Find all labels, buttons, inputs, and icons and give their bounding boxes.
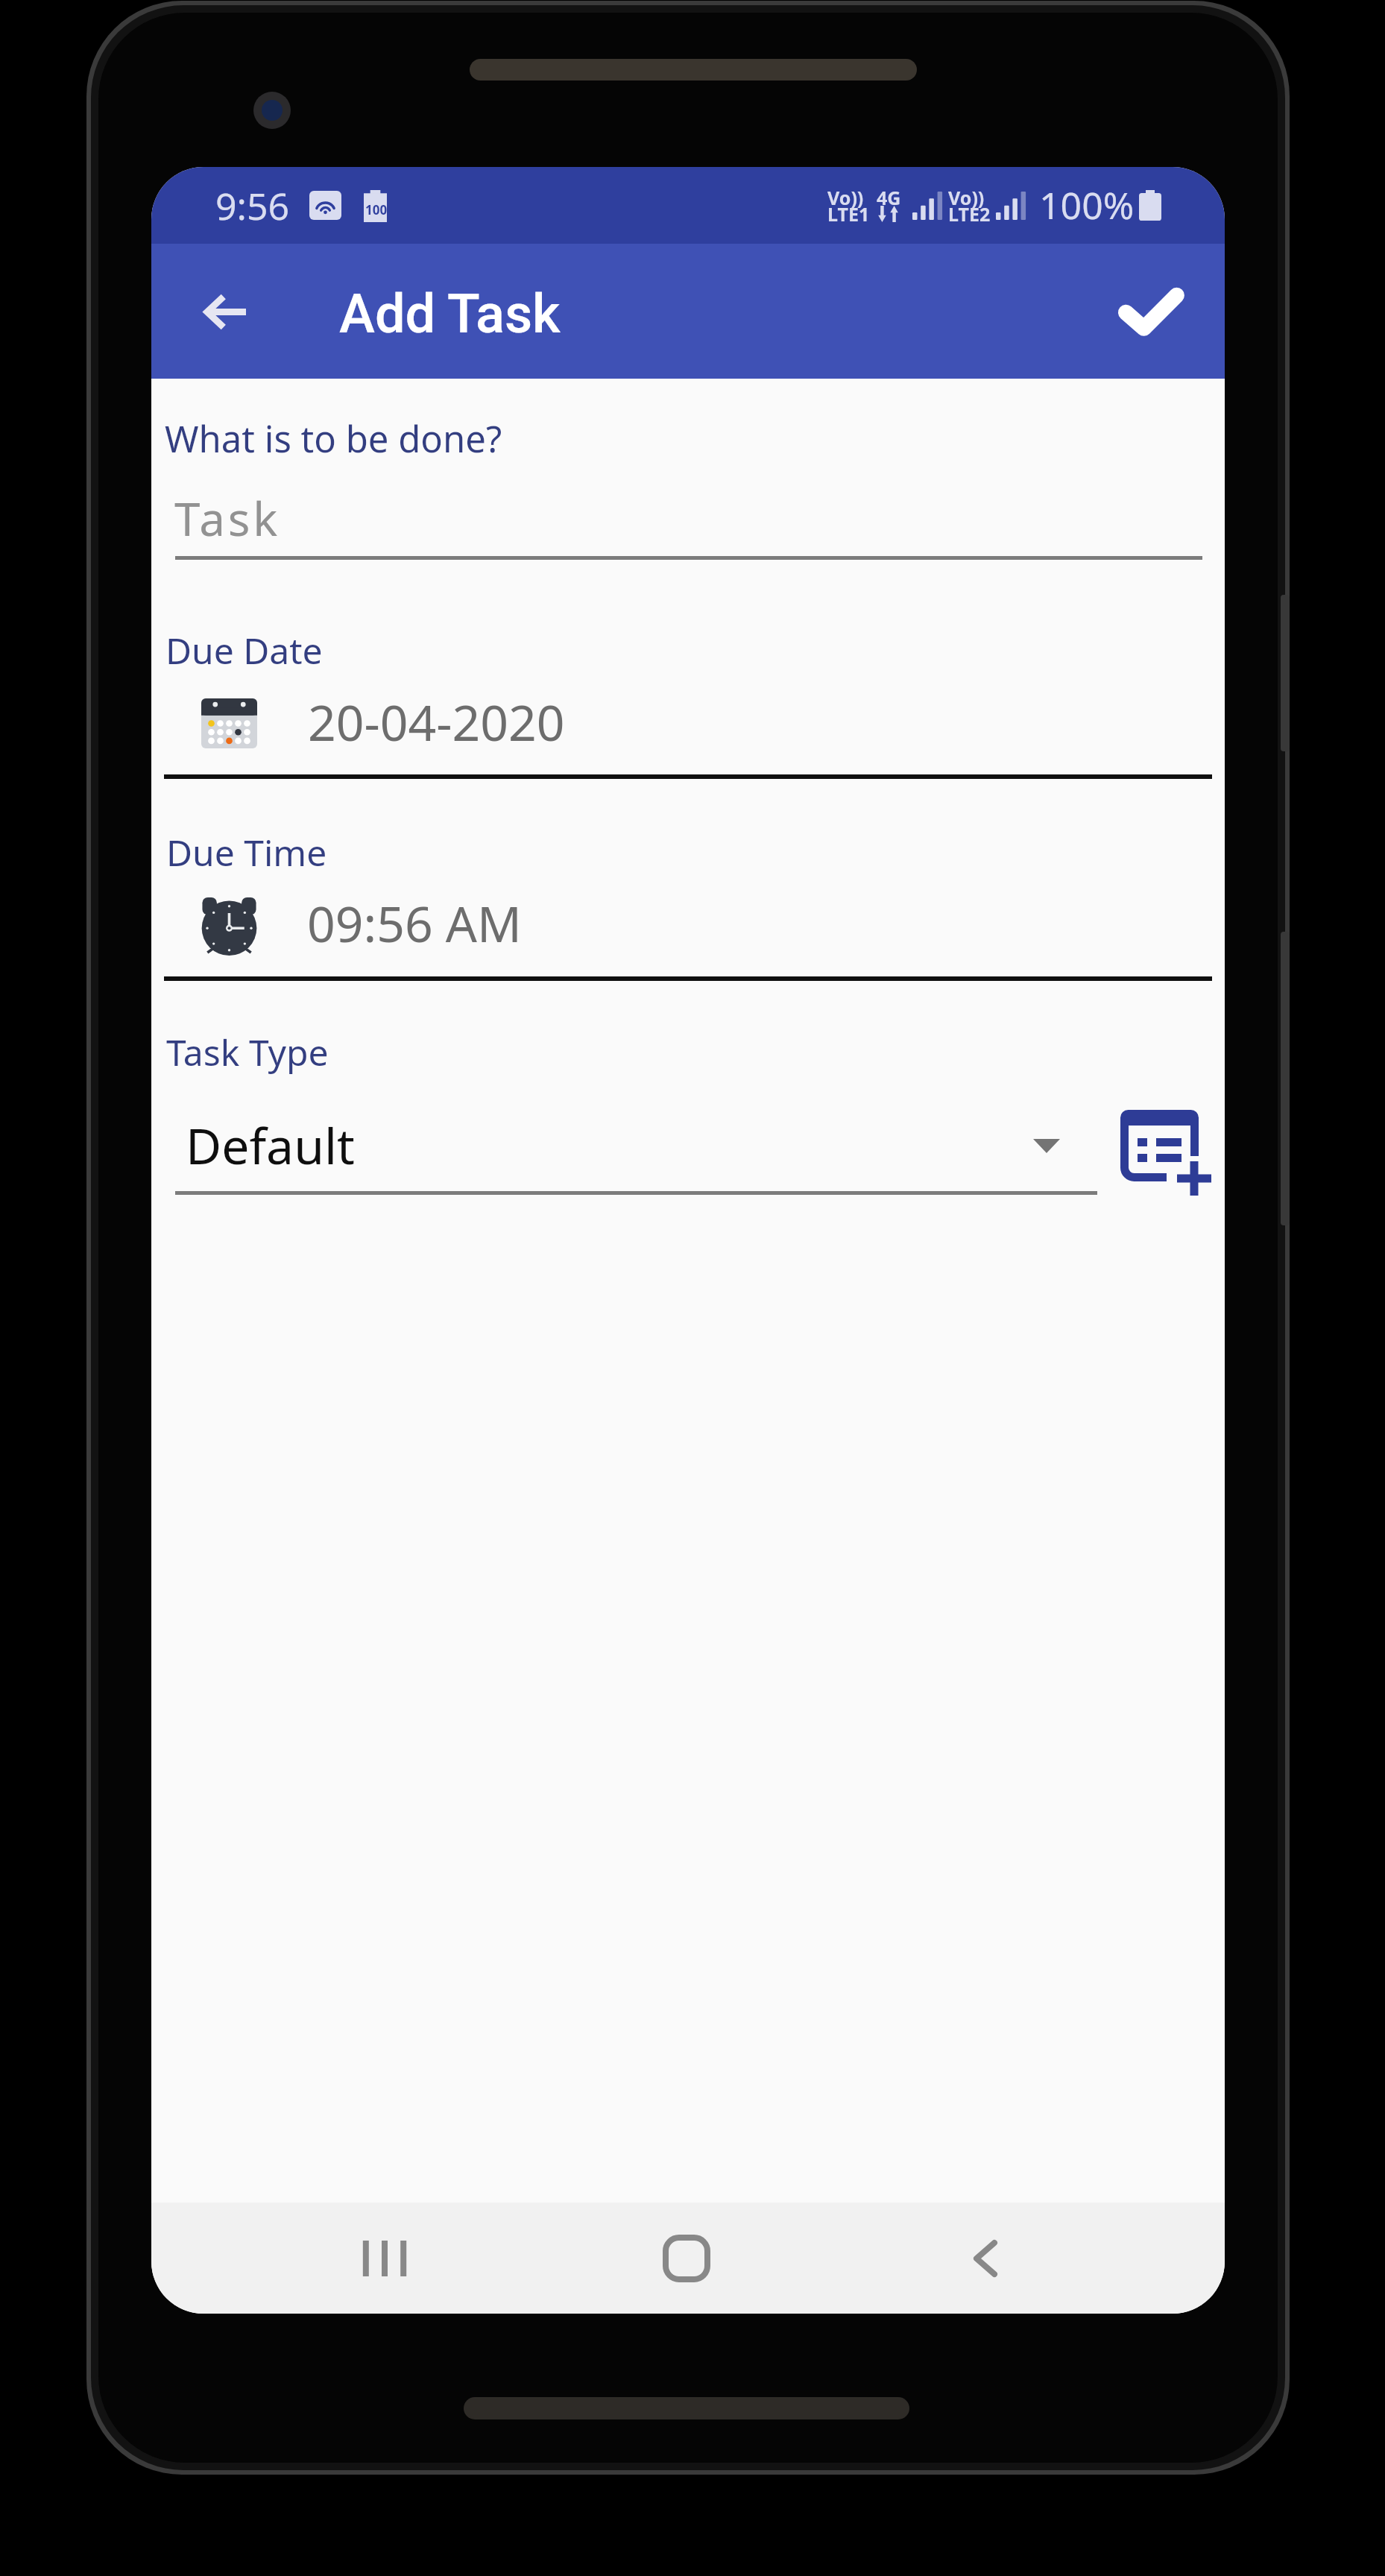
button[interactable]: Due time 09:56 AM: [162, 878, 1214, 975]
staticText: LTE1: [827, 201, 870, 227]
staticText: Due Time: [166, 828, 327, 877]
staticText: Task: [174, 487, 280, 549]
staticText: Default: [186, 1111, 355, 1178]
button[interactable]: Task type: Default: [162, 1090, 1097, 1192]
staticText: 100%: [1039, 180, 1135, 230]
staticText: Due Date: [165, 626, 323, 675]
button[interactable]: Save task: [1100, 261, 1202, 362]
button[interactable]: Create new task type: [1103, 1093, 1225, 1213]
staticText: Add Task: [339, 282, 561, 345]
button[interactable]: Due date 20-04-2020: [162, 677, 1214, 774]
staticText: 20-04-2020: [308, 688, 565, 755]
staticText: 09:56 AM: [307, 889, 522, 956]
staticText: 9:56: [215, 180, 290, 231]
staticText: What is to be done?: [165, 414, 502, 464]
staticText: 4G: [877, 185, 901, 210]
staticText: Vo)): [948, 185, 985, 210]
staticText: Vo)): [827, 185, 864, 210]
button[interactable]: Navigate up: [174, 261, 275, 362]
staticText: 100: [365, 201, 388, 218]
button[interactable]: Back: [929, 2203, 1042, 2314]
button[interactable]: Task name input: [162, 461, 1202, 565]
staticText: LTE2: [948, 201, 991, 227]
button[interactable]: Home: [630, 2203, 743, 2314]
button[interactable]: Recent apps: [328, 2203, 441, 2314]
staticText: Task Type: [166, 1028, 329, 1076]
